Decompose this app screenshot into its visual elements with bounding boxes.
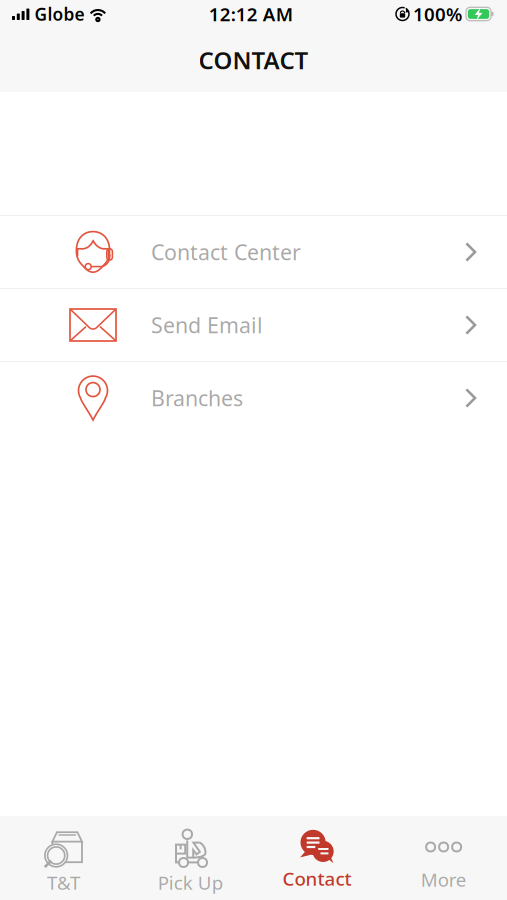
staticText: Pick Up [158, 870, 223, 895]
staticText: 100% [413, 2, 462, 26]
staticText: More [421, 867, 467, 892]
staticText: CONTACT [198, 44, 308, 76]
staticText: Contact Center [151, 238, 301, 266]
staticText: Send Email [151, 311, 263, 339]
staticText: 12:12 AM [209, 2, 293, 26]
button[interactable]: Send Email [0, 289, 507, 361]
button[interactable]: More [380, 816, 507, 900]
staticText: Contact [282, 866, 351, 891]
button[interactable]: Pick Up [127, 816, 254, 900]
button[interactable]: Branches [0, 362, 507, 434]
button[interactable]: Contact Center [0, 216, 507, 288]
button[interactable]: T&T [0, 816, 127, 900]
staticText: T&T [47, 870, 80, 895]
staticText: Globe [34, 2, 84, 25]
staticText: Branches [151, 384, 243, 412]
button[interactable]: Contact [253, 816, 380, 900]
